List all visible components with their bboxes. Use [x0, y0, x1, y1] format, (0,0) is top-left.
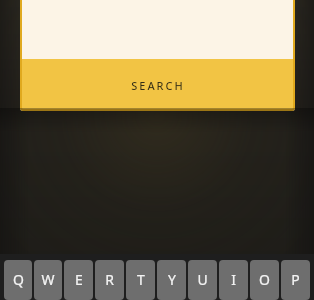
staticText: W: [41, 270, 55, 289]
button[interactable]: Key P: [281, 260, 310, 300]
staticText: O: [259, 270, 270, 289]
staticText: Y: [168, 270, 176, 289]
button[interactable]: SEARCH: [20, 59, 295, 111]
staticText: P: [291, 270, 300, 289]
button[interactable]: Key I: [219, 260, 248, 300]
staticText: SEARCH: [131, 78, 185, 93]
button[interactable]: Key T: [126, 260, 155, 300]
button[interactable]: Key U: [188, 260, 217, 300]
staticText: Q: [13, 270, 24, 289]
staticText: U: [197, 270, 208, 289]
staticText: R: [105, 270, 114, 289]
button[interactable]: Key E: [64, 260, 93, 300]
button[interactable]: Key O: [250, 260, 279, 300]
button[interactable]: Key Q: [4, 260, 32, 300]
staticText: E: [75, 270, 83, 289]
staticText: I: [231, 270, 236, 289]
button[interactable]: Key Y: [157, 260, 186, 300]
button[interactable]: Key R: [95, 260, 124, 300]
button[interactable]: Key W: [34, 260, 62, 300]
button[interactable]: [20, 0, 295, 59]
staticText: T: [137, 270, 145, 289]
